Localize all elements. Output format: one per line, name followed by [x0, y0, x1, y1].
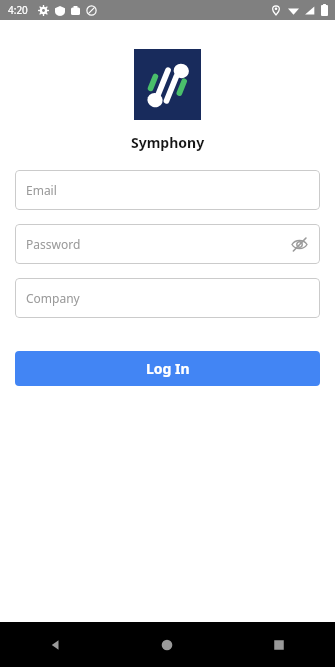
staticText: Company — [26, 290, 80, 306]
staticText: Log In — [146, 359, 190, 378]
staticText: 4:20 — [8, 3, 28, 17]
staticText: Symphony — [131, 133, 205, 152]
button[interactable]: Show password — [288, 233, 310, 255]
button[interactable]: Recents — [223, 622, 335, 667]
staticText: Email — [26, 182, 57, 198]
button[interactable]: Company — [15, 278, 320, 318]
button[interactable]: Log In — [15, 351, 320, 386]
button[interactable]: Home — [111, 622, 223, 667]
button[interactable]: Password — [15, 224, 320, 264]
button[interactable]: Email — [15, 170, 320, 210]
button[interactable]: Back — [0, 622, 111, 667]
staticText: Password — [26, 236, 81, 252]
